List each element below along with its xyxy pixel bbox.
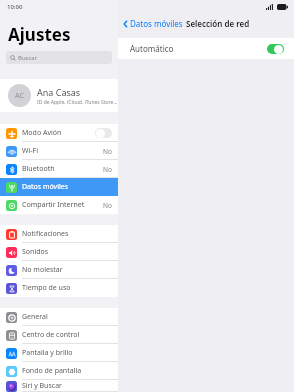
staticText: Selección de red [186,18,250,29]
staticText: Bluetooth [22,164,103,174]
staticText: No [103,165,112,174]
staticText: No molestar [22,265,112,275]
staticText: ID de Apple, iCloud, iTunes Store… [37,99,118,106]
button[interactable]: Centro de control [0,326,118,344]
staticText: Automático [130,43,174,54]
staticText: Fondo de pantalla [22,366,112,376]
staticText: Datos móviles [22,182,112,192]
staticText: Ana Casas [37,86,81,98]
staticText: Tiempo de uso [22,283,112,293]
staticText: General [22,312,112,322]
button[interactable]: Tiempo de uso [0,279,118,297]
staticText: Notificaciones [22,229,112,239]
staticText: Compartir Internet [22,200,103,210]
button[interactable]: Datos móviles [0,178,118,196]
button[interactable]: No molestar [0,261,118,279]
staticText: Sonidos [22,247,112,257]
button[interactable]: Compartir Internet [0,196,118,214]
staticText: Buscar [18,54,38,62]
button[interactable]: Sonidos [0,243,118,261]
staticText: Ajustes [8,23,71,46]
button[interactable]: Buscar [6,51,112,64]
staticText: Centro de control [22,330,112,340]
button[interactable]: General [0,308,118,326]
button[interactable]: Activado [267,44,284,54]
staticText: Datos móviles [130,18,183,29]
button[interactable]: Pantalla y brillo [0,344,118,362]
button[interactable]: AC [0,79,118,112]
button[interactable]: Wi-Fi [0,142,118,160]
staticText: Modo Avión [22,128,95,138]
staticText: No [103,147,112,156]
staticText: AC [15,91,24,101]
staticText: No [103,201,112,210]
button[interactable]: Siri y Buscar [0,380,118,392]
staticText: Pantalla y brillo [22,348,112,358]
button[interactable]: Datos móviles [123,18,183,29]
staticText: Siri y Buscar [22,381,112,391]
staticText: 10:00 [7,3,23,11]
button[interactable]: Fondo de pantalla [0,362,118,380]
button[interactable]: Notificaciones [0,225,118,243]
staticText: Wi-Fi [22,146,103,156]
button[interactable]: Automático [118,38,294,59]
button[interactable]: Desactivado [95,128,112,138]
button[interactable]: Modo Avión [0,124,118,142]
button[interactable]: Bluetooth [0,160,118,178]
